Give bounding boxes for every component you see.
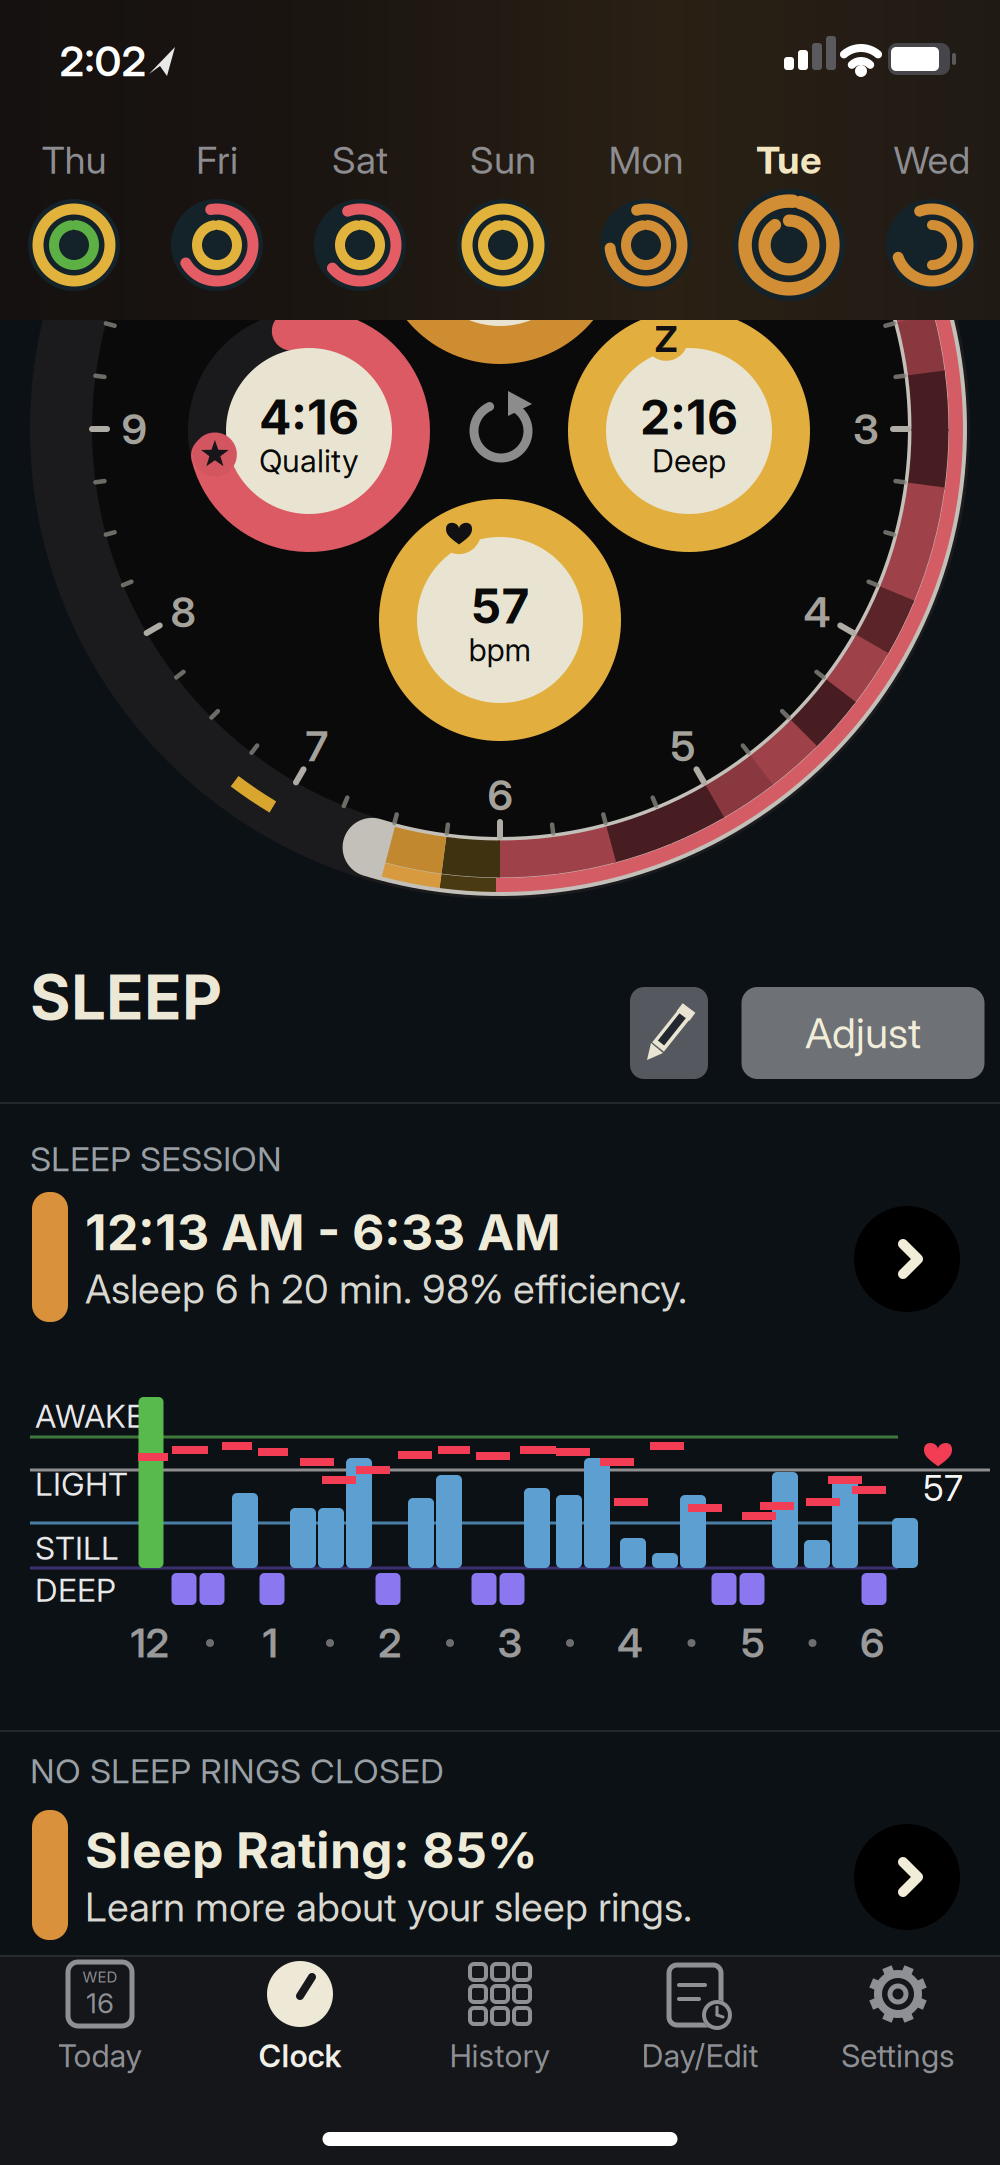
staticText: Thu (41, 137, 106, 183)
staticText: Learn more about your sleep rings. (85, 1883, 692, 1931)
staticText: Fri (196, 137, 238, 183)
staticText: 12:13 AM - 6:33 AM (85, 1202, 561, 1262)
staticText: SLEEP (30, 959, 222, 1034)
staticText: SLEEP SESSION (30, 1138, 282, 1179)
staticText: 5 (670, 721, 695, 771)
button[interactable]: Day/Edit (610, 1952, 790, 2092)
staticText: Adjust (805, 1008, 921, 1058)
button[interactable]: Sun (438, 110, 568, 320)
button[interactable]: Edit (630, 987, 708, 1079)
staticText: 6 (860, 1619, 884, 1667)
staticText: LIGHT (35, 1465, 128, 1503)
staticText: 57 (470, 577, 529, 635)
button[interactable]: Refresh (461, 390, 541, 470)
staticText: 4 (803, 587, 830, 637)
staticText: Z (654, 317, 677, 361)
staticText: 3 (497, 1619, 522, 1667)
staticText: 1 (262, 1619, 277, 1667)
staticText: Wed (893, 137, 970, 183)
staticText: Day/Edit (641, 2037, 758, 2075)
staticText: 4 (617, 1619, 643, 1667)
staticText: 7 (305, 721, 328, 771)
staticText: 6 (487, 770, 512, 820)
button[interactable]: Today (10, 1952, 190, 2092)
staticText: bpm (468, 631, 531, 669)
button[interactable]: 12:13 AM - 6:33 AM (0, 1182, 1000, 1332)
staticText: 12 (130, 1619, 169, 1667)
staticText: 4:16 (259, 388, 359, 446)
staticText: AWAKE (35, 1397, 145, 1435)
button[interactable]: Wed (867, 110, 997, 320)
staticText: 5 (741, 1619, 765, 1667)
staticText: Sat (332, 137, 388, 183)
staticText: 3 (853, 404, 879, 454)
staticText: 2:02 (59, 36, 146, 86)
staticText: 2:16 (640, 388, 738, 446)
staticText: WED (82, 1968, 117, 1986)
staticText: 8 (170, 587, 195, 637)
button[interactable]: Mon (581, 110, 711, 320)
button[interactable]: Thu (9, 110, 139, 320)
staticText: DEEP (35, 1571, 116, 1609)
staticText: Sleep Rating: 85% (85, 1820, 538, 1880)
staticText: Asleep 6 h 20 min. 98% efficiency. (85, 1265, 687, 1313)
staticText: Deep (652, 442, 726, 480)
staticText: Quality (259, 442, 359, 480)
staticText: History (449, 2037, 550, 2075)
staticText: Clock (258, 2037, 341, 2075)
button[interactable]: Clock (210, 1952, 390, 2092)
staticText: 16 (86, 1986, 114, 2020)
staticText: Tue (756, 137, 822, 183)
button[interactable]: Sleep Rating: 85% (0, 1800, 1000, 1950)
staticText: NO SLEEP RINGS CLOSED (30, 1750, 444, 1791)
button[interactable]: Settings (808, 1952, 988, 2092)
staticText: 2 (378, 1619, 402, 1667)
staticText: 9 (121, 404, 146, 454)
staticText: STILL (35, 1529, 119, 1567)
button[interactable]: History (410, 1952, 590, 2092)
staticText: Today (57, 2037, 142, 2075)
staticText: Sun (470, 137, 536, 183)
button[interactable]: Sat (295, 110, 425, 320)
staticText: Mon (608, 137, 683, 183)
staticText: 57 (923, 1466, 963, 1510)
button[interactable]: Adjust (741, 987, 984, 1079)
button[interactable]: Tue (724, 110, 854, 320)
button[interactable]: Fri (152, 110, 282, 320)
staticText: Settings (841, 2037, 955, 2075)
